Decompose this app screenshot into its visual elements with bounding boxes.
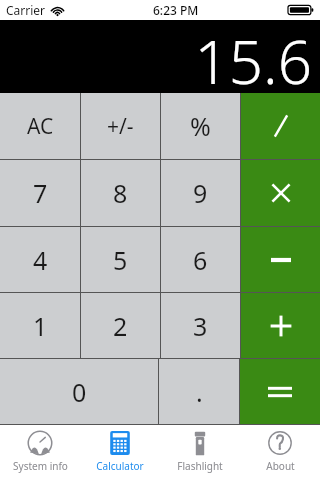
button[interactable]: 3 (161, 293, 240, 358)
staticText: System info (13, 459, 68, 473)
button[interactable]: 4 (0, 227, 80, 292)
staticText: 6 (193, 243, 208, 277)
button[interactable]: . (159, 359, 239, 424)
button[interactable]: 5 (81, 227, 160, 292)
button[interactable]: System info (0, 425, 80, 480)
button[interactable] (241, 293, 320, 358)
button[interactable]: 8 (81, 160, 160, 226)
button[interactable]: 7 (0, 160, 80, 226)
staticText: 2 (113, 309, 128, 343)
button[interactable]: Calculator (80, 425, 160, 480)
staticText: 4 (33, 243, 48, 277)
staticText: 6:23 PM (153, 2, 199, 18)
staticText: 3 (193, 309, 208, 343)
button[interactable]: About (240, 425, 320, 480)
button[interactable]: 1 (0, 293, 80, 358)
staticText: AC (27, 112, 54, 141)
button[interactable]: 0 (0, 359, 158, 424)
button[interactable]: 9 (161, 160, 240, 226)
staticText: Carrier (6, 2, 46, 18)
button[interactable]: % (161, 93, 240, 159)
staticText: 0 (72, 375, 87, 409)
button[interactable]: AC (0, 93, 80, 159)
button[interactable]: 2 (81, 293, 160, 358)
staticText: About (266, 459, 295, 473)
staticText: . (196, 375, 203, 409)
staticText: 1 (33, 309, 48, 343)
button[interactable] (240, 359, 320, 424)
staticText: 5 (113, 243, 128, 277)
button[interactable]: 6 (161, 227, 240, 292)
staticText: +/- (107, 112, 134, 141)
button[interactable]: Flashlight (160, 425, 240, 480)
staticText: 9 (193, 176, 208, 210)
button[interactable] (241, 93, 320, 159)
staticText: Calculator (96, 459, 144, 473)
staticText: 15.6 (194, 20, 312, 93)
staticText: 7 (33, 176, 48, 210)
staticText: Flashlight (177, 459, 223, 473)
button[interactable] (241, 227, 320, 292)
staticText: % (190, 109, 211, 143)
button[interactable]: +/- (81, 93, 160, 159)
button[interactable] (241, 160, 320, 226)
staticText: 8 (113, 176, 128, 210)
